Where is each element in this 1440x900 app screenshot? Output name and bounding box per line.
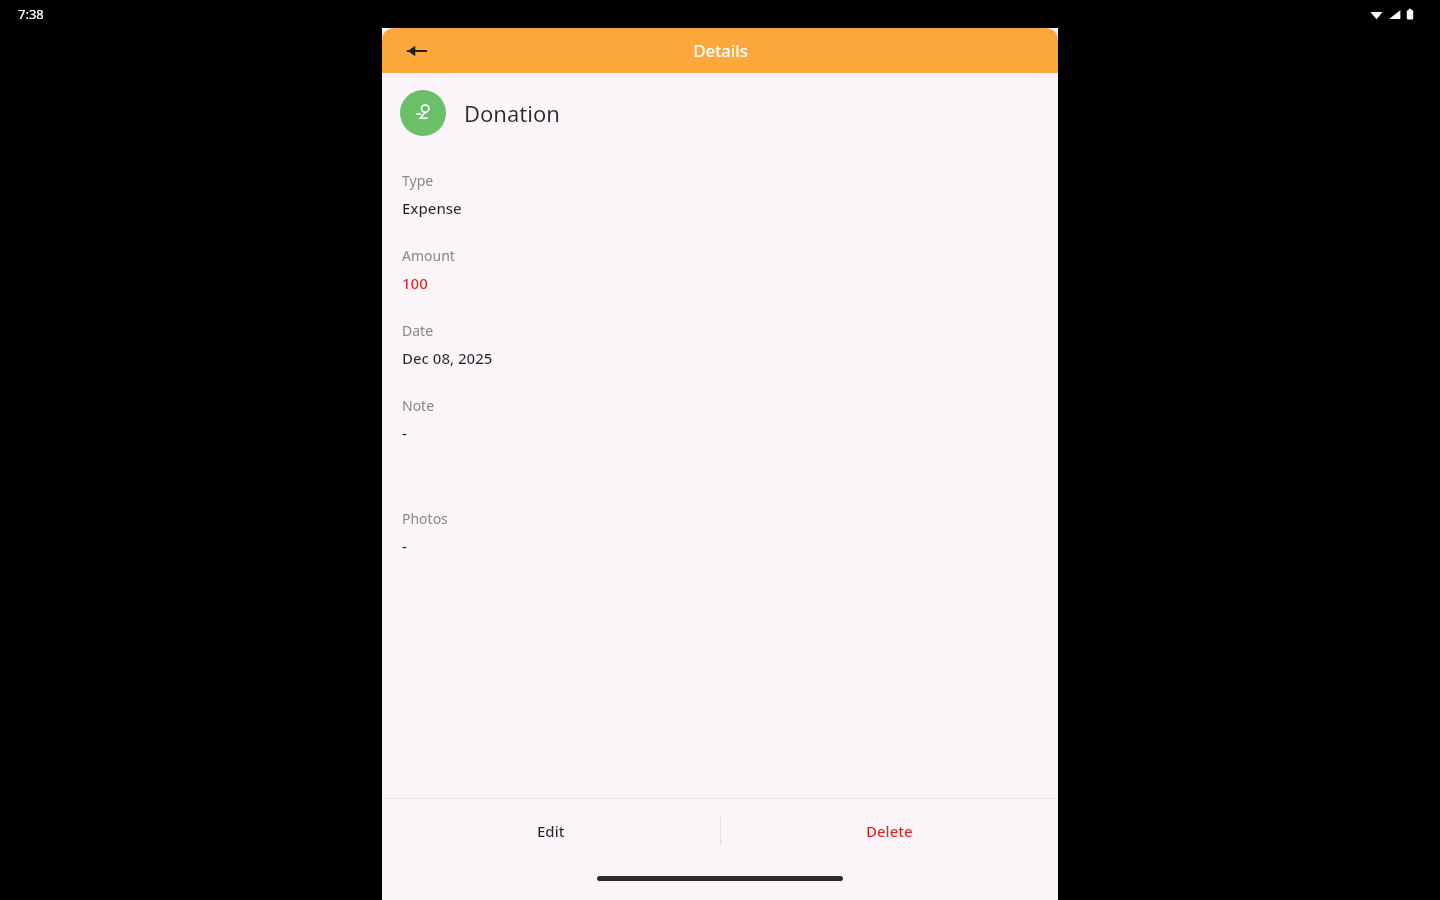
staticText: Dec 08, 2025 <box>402 348 493 368</box>
staticText: 100 <box>402 273 428 293</box>
staticText: Delete <box>866 821 913 841</box>
button[interactable]: Delete <box>720 799 1058 863</box>
staticText: Photos <box>402 509 448 528</box>
staticText: Note <box>402 396 435 415</box>
staticText: Donation <box>464 98 560 128</box>
staticText: Edit <box>537 821 565 841</box>
button[interactable]: Edit <box>382 799 720 863</box>
staticText: Expense <box>402 198 462 218</box>
staticText: Date <box>402 321 434 340</box>
staticText: - <box>402 536 407 556</box>
staticText: Amount <box>402 246 455 265</box>
staticText: Type <box>402 171 434 190</box>
button[interactable]: Back <box>400 34 434 68</box>
staticText: 7:38 <box>18 5 44 23</box>
staticText: - <box>402 423 407 443</box>
staticText: Details <box>693 39 748 62</box>
